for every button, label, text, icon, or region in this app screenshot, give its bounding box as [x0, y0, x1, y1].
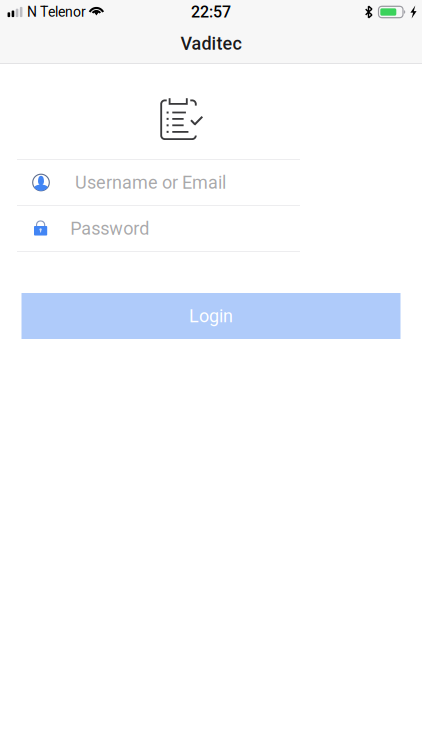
button[interactable]: Password — [17, 206, 300, 251]
staticText: Login — [189, 305, 233, 327]
button[interactable]: Login — [21, 293, 400, 339]
staticText: 22:57 — [191, 3, 231, 21]
staticText: Username or Email — [75, 172, 226, 193]
staticText: N Telenor — [27, 4, 86, 20]
staticText: Password — [70, 218, 149, 239]
button[interactable]: Username or Email — [17, 160, 300, 205]
staticText: Vaditec — [180, 33, 241, 54]
